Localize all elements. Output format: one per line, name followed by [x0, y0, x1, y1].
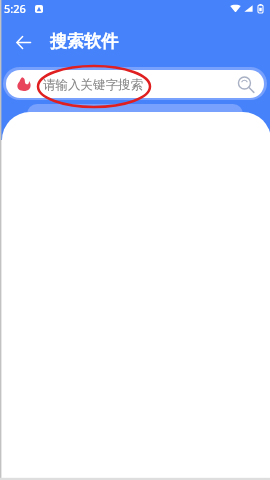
button[interactable]: Back [8, 27, 38, 57]
button[interactable]: Search [237, 75, 255, 93]
staticText: 搜索软件 [50, 31, 118, 52]
staticText: 5:26 [4, 1, 26, 16]
button[interactable]: 请输入关键字搜索 [6, 70, 264, 98]
staticText: 请输入关键字搜索 [43, 77, 143, 93]
